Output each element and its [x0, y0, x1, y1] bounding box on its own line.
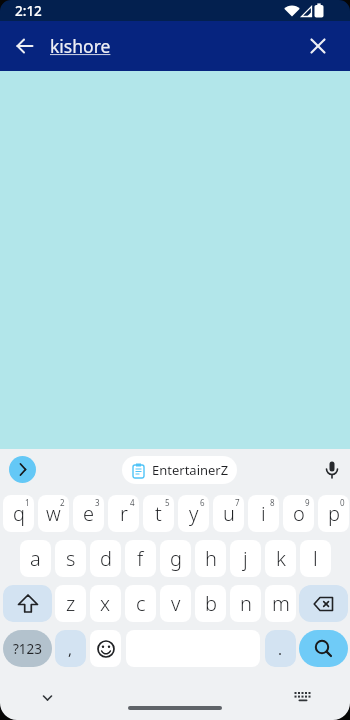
button[interactable]: n: [230, 585, 261, 622]
staticText: a: [30, 545, 41, 572]
staticText: i: [261, 500, 266, 527]
staticText: f: [137, 545, 144, 572]
button[interactable]: .: [265, 630, 296, 667]
staticText: 1: [25, 497, 30, 508]
staticText: 4: [130, 497, 135, 508]
button[interactable]: u: [213, 495, 244, 532]
button[interactable]: t: [143, 495, 174, 532]
staticText: .: [278, 639, 283, 659]
staticText: t: [155, 500, 162, 527]
button[interactable]: j: [230, 540, 261, 577]
staticText: h: [205, 545, 217, 572]
staticText: 6: [200, 497, 205, 508]
button[interactable]: m: [265, 585, 296, 622]
staticText: d: [100, 545, 112, 572]
button[interactable]: z: [55, 585, 86, 622]
button[interactable]: e: [73, 495, 104, 532]
staticText: v: [171, 590, 181, 617]
staticText: o: [293, 500, 305, 527]
button[interactable]: [299, 630, 348, 667]
button[interactable]: c: [125, 585, 156, 622]
button[interactable]: [306, 34, 330, 58]
button[interactable]: d: [90, 540, 121, 577]
button[interactable]: g: [160, 540, 191, 577]
button[interactable]: y: [178, 495, 209, 532]
staticText: ,: [68, 639, 73, 659]
button[interactable]: [13, 34, 37, 58]
button[interactable]: [35, 686, 59, 710]
button[interactable]: v: [160, 585, 191, 622]
button[interactable]: p: [318, 495, 349, 532]
staticText: 2:12: [15, 2, 42, 20]
button[interactable]: [90, 630, 121, 667]
button[interactable]: [320, 458, 344, 482]
staticText: 0: [340, 497, 345, 508]
button[interactable]: h: [195, 540, 226, 577]
staticText: j: [243, 545, 248, 572]
staticText: x: [100, 590, 111, 617]
staticText: w: [46, 500, 61, 527]
staticText: 7: [235, 497, 240, 508]
staticText: 8: [270, 497, 275, 508]
staticText: 9: [305, 497, 310, 508]
staticText: k: [276, 545, 286, 572]
staticText: c: [136, 590, 146, 617]
staticText: z: [66, 590, 76, 617]
staticText: g: [170, 545, 182, 572]
staticText: y: [189, 500, 199, 527]
button[interactable]: r: [108, 495, 139, 532]
button[interactable]: w: [38, 495, 69, 532]
button[interactable]: ,: [55, 630, 86, 667]
staticText: u: [223, 500, 235, 527]
staticText: 5: [165, 497, 170, 508]
button[interactable]: f: [125, 540, 156, 577]
staticText: b: [205, 590, 217, 617]
staticText: s: [66, 545, 76, 572]
button[interactable]: [291, 686, 315, 710]
staticText: p: [328, 500, 340, 527]
staticText: r: [120, 500, 128, 527]
button[interactable]: [9, 456, 36, 483]
staticText: ?123: [13, 640, 43, 658]
button[interactable]: [299, 585, 348, 622]
button[interactable]: l: [300, 540, 331, 577]
staticText: e: [83, 500, 95, 527]
staticText: l: [313, 545, 318, 572]
button[interactable]: [3, 585, 52, 622]
staticText: EntertainerZ: [152, 461, 229, 479]
button[interactable]: EntertainerZ: [122, 456, 237, 484]
button[interactable]: ?123: [3, 630, 52, 667]
button[interactable]: x: [90, 585, 121, 622]
staticText: q: [13, 500, 25, 527]
staticText: n: [240, 590, 252, 617]
button[interactable]: s: [55, 540, 86, 577]
button[interactable]: a: [20, 540, 51, 577]
staticText: 2: [60, 497, 65, 508]
button[interactable]: i: [248, 495, 279, 532]
button[interactable]: b: [195, 585, 226, 622]
staticText: 3: [95, 497, 100, 508]
button[interactable]: o: [283, 495, 314, 532]
staticText: m: [272, 590, 290, 617]
staticText: kishore: [50, 34, 111, 58]
button[interactable]: k: [265, 540, 296, 577]
button[interactable]: q: [3, 495, 34, 532]
